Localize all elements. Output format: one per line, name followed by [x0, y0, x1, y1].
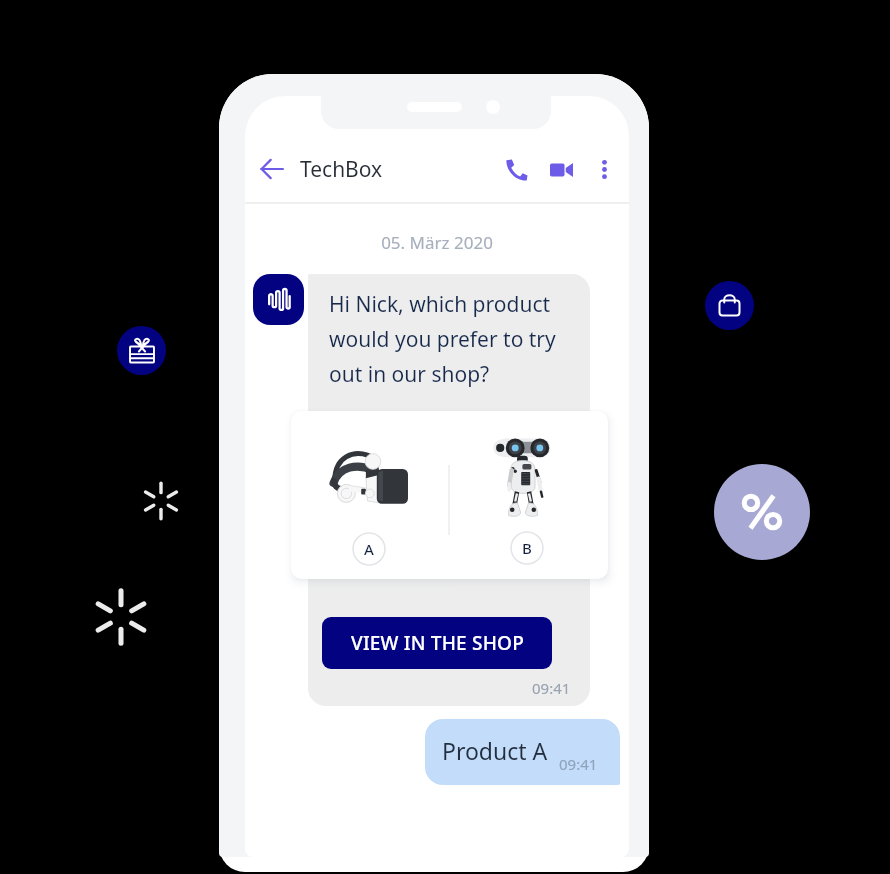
button[interactable]: Discount — [714, 464, 810, 560]
button[interactable]: More options — [584, 149, 624, 189]
staticText: 05. März 2020 — [245, 231, 629, 254]
button[interactable]: A — [352, 532, 386, 566]
staticText: VIEW IN THE SHOP — [351, 630, 524, 656]
button[interactable]: Video call — [539, 147, 583, 191]
staticText: Product A — [442, 735, 548, 766]
staticText: Hi Nick, which product would you prefer … — [329, 290, 556, 389]
button[interactable]: VIEW IN THE SHOP — [322, 617, 552, 669]
button[interactable]: Gift — [117, 326, 166, 375]
button[interactable]: B — [510, 531, 544, 565]
staticText: 09:41 — [532, 678, 571, 698]
staticText: TechBox — [300, 155, 383, 184]
staticText: B — [522, 538, 532, 558]
button[interactable]: Call — [494, 147, 538, 191]
staticText: A — [364, 539, 374, 559]
button[interactable]: Shopping bag — [705, 281, 754, 330]
button[interactable]: Back — [250, 147, 294, 191]
button[interactable]: Product A — [425, 719, 620, 785]
staticText: 09:41 — [559, 754, 598, 774]
